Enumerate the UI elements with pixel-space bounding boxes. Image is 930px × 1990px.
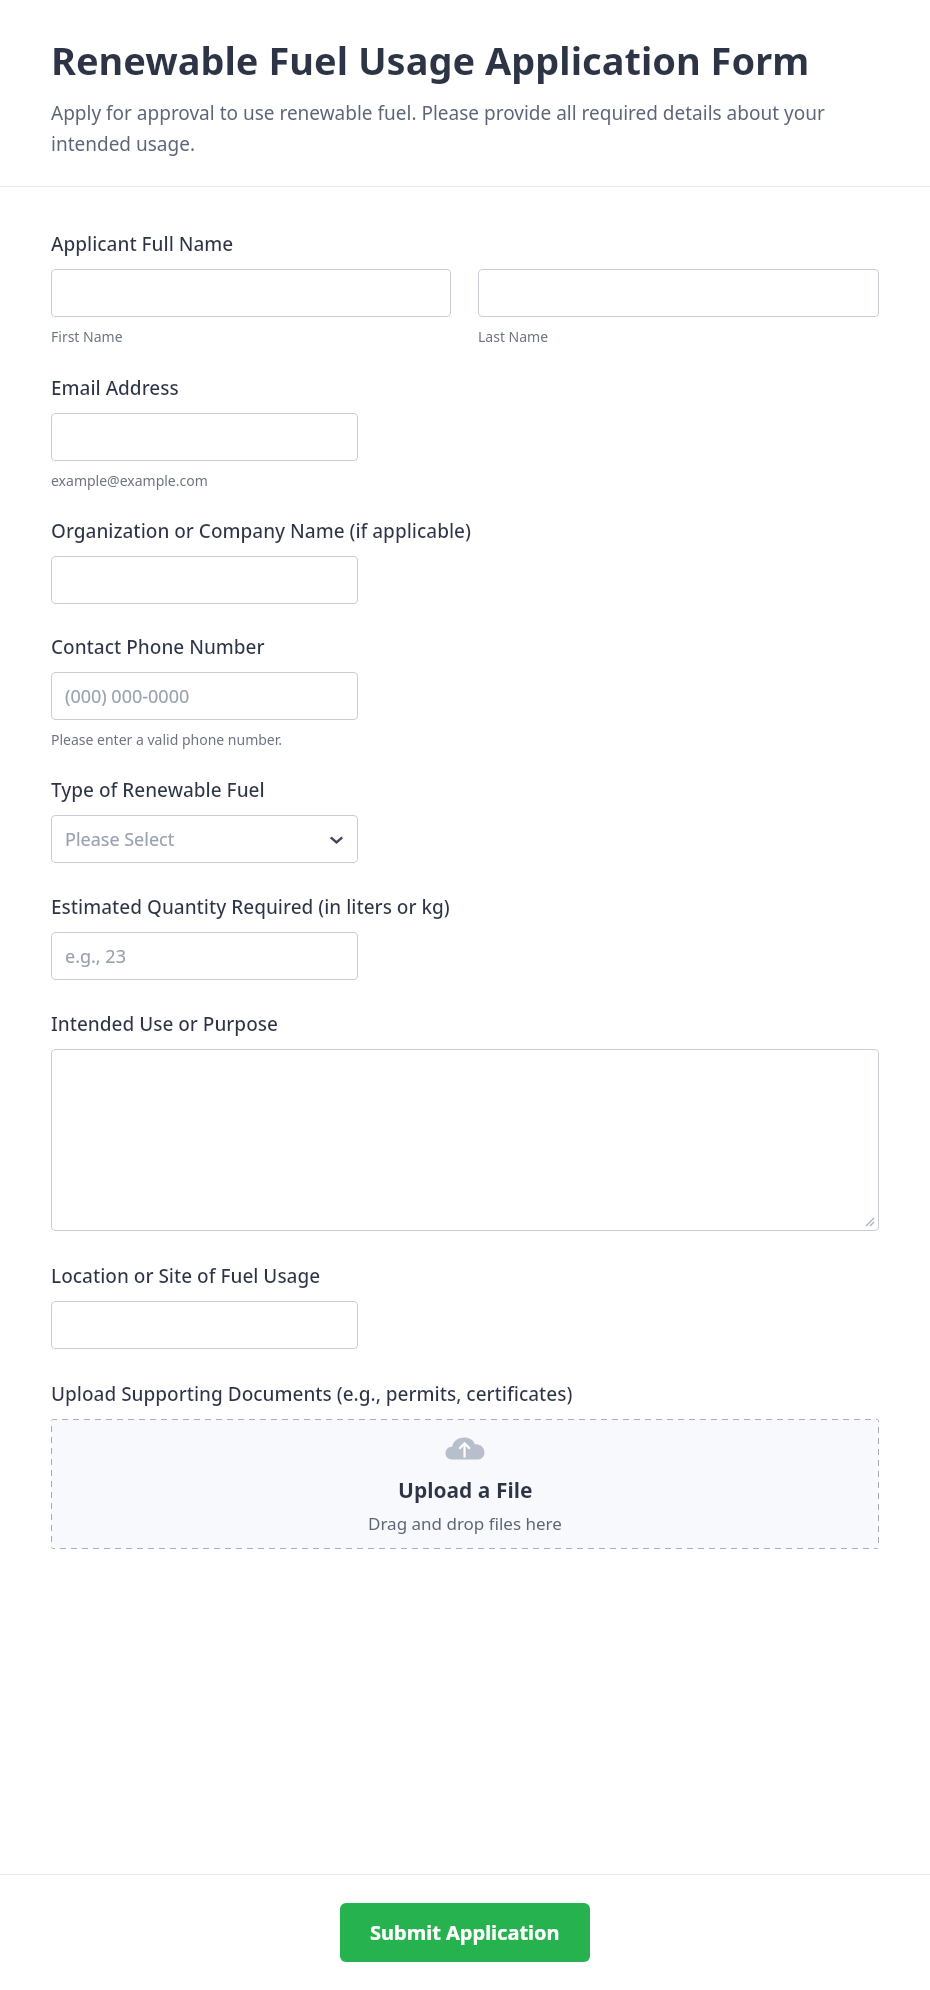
staticText: Drag and drop files here: [368, 1512, 562, 1535]
staticText: Last Name: [478, 327, 549, 346]
staticText: Apply for approval to use renewable fuel…: [51, 100, 890, 156]
staticText: Estimated Quantity Required (in liters o…: [51, 894, 450, 920]
staticText: (000) 000-0000: [65, 684, 190, 709]
staticText: Contact Phone Number: [51, 634, 265, 660]
button[interactable]: [478, 269, 879, 317]
button[interactable]: [51, 1301, 358, 1349]
staticText: Location or Site of Fuel Usage: [51, 1263, 321, 1289]
staticText: Email Address: [51, 375, 179, 401]
button[interactable]: (000) 000-0000: [51, 672, 358, 720]
staticText: example@example.com: [51, 471, 208, 490]
staticText: Applicant Full Name: [51, 231, 234, 257]
staticText: Submit Application: [370, 1919, 560, 1946]
staticText: Please enter a valid phone number.: [51, 730, 283, 749]
staticText: Upload a File: [398, 1476, 533, 1505]
staticText: Organization or Company Name (if applica…: [51, 518, 471, 544]
staticText: Please Select: [65, 827, 175, 852]
staticText: Type of Renewable Fuel: [51, 777, 265, 803]
button[interactable]: e.g., 23: [51, 932, 358, 980]
staticText: Upload Supporting Documents (e.g., permi…: [51, 1381, 573, 1407]
button[interactable]: [51, 269, 451, 317]
button[interactable]: [51, 556, 358, 604]
staticText: Renewable Fuel Usage Application Form: [51, 34, 810, 86]
button[interactable]: Submit Application: [340, 1903, 590, 1962]
button[interactable]: [51, 413, 358, 461]
staticText: First Name: [51, 327, 123, 346]
button[interactable]: Please Select: [51, 815, 358, 863]
button[interactable]: [51, 1049, 879, 1231]
staticText: e.g., 23: [65, 944, 126, 969]
staticText: Intended Use or Purpose: [51, 1011, 278, 1037]
button[interactable]: Upload a file: [51, 1419, 879, 1549]
